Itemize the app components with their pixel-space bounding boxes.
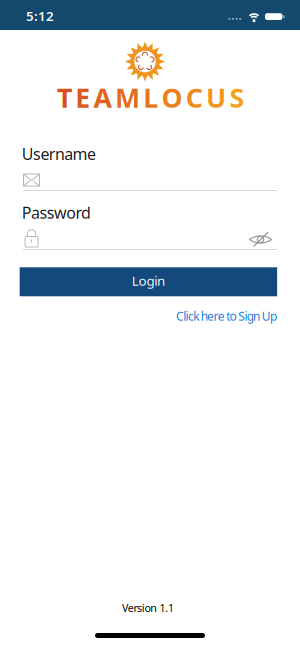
staticText: S bbox=[229, 80, 244, 115]
staticText: T bbox=[57, 80, 72, 115]
button[interactable] bbox=[22, 224, 277, 250]
staticText: Password bbox=[22, 202, 91, 223]
staticText: E bbox=[75, 80, 90, 115]
staticText: Click here to Sign Up bbox=[176, 308, 277, 324]
button[interactable]: Click here to Sign Up bbox=[0, 308, 300, 324]
button[interactable] bbox=[22, 166, 277, 192]
staticText: M bbox=[115, 80, 140, 115]
staticText: Version 1.1 bbox=[122, 601, 174, 615]
staticText: 5:12 bbox=[26, 7, 54, 25]
staticText: Login bbox=[132, 272, 165, 289]
staticText: A bbox=[94, 80, 112, 115]
staticText: Username bbox=[22, 143, 96, 164]
button[interactable] bbox=[248, 229, 272, 249]
button[interactable]: Login bbox=[20, 267, 277, 296]
staticText: O bbox=[161, 80, 182, 115]
staticText: L bbox=[143, 80, 158, 115]
staticText: U bbox=[206, 80, 226, 115]
staticText: C bbox=[186, 80, 203, 115]
